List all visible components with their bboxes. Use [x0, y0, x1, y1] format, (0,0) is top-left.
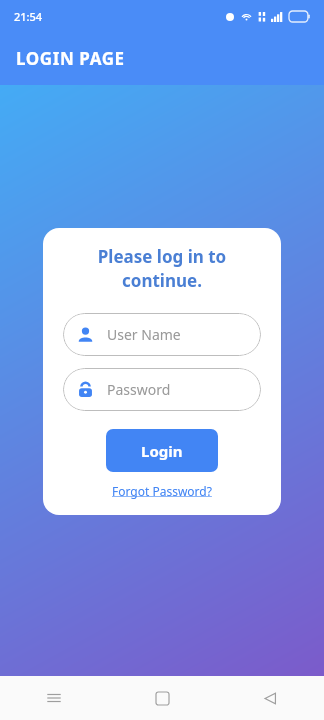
staticText: Please log in to continue.	[63, 245, 261, 292]
button[interactable]: User Name	[63, 313, 261, 356]
staticText: LOGIN PAGE	[16, 47, 125, 70]
staticText: Login	[141, 441, 183, 461]
button[interactable]: Forgot Password?	[110, 481, 214, 501]
button[interactable]: Home	[108, 676, 216, 720]
button[interactable]: Back	[216, 676, 324, 720]
button[interactable]: Recents	[0, 676, 108, 720]
staticText: 21:54	[14, 9, 43, 24]
staticText: User Name	[107, 325, 181, 344]
button[interactable]: Password	[63, 368, 261, 411]
button[interactable]: Login	[106, 429, 218, 472]
staticText: Password	[107, 380, 171, 399]
staticText: Forgot Password?	[112, 483, 212, 499]
